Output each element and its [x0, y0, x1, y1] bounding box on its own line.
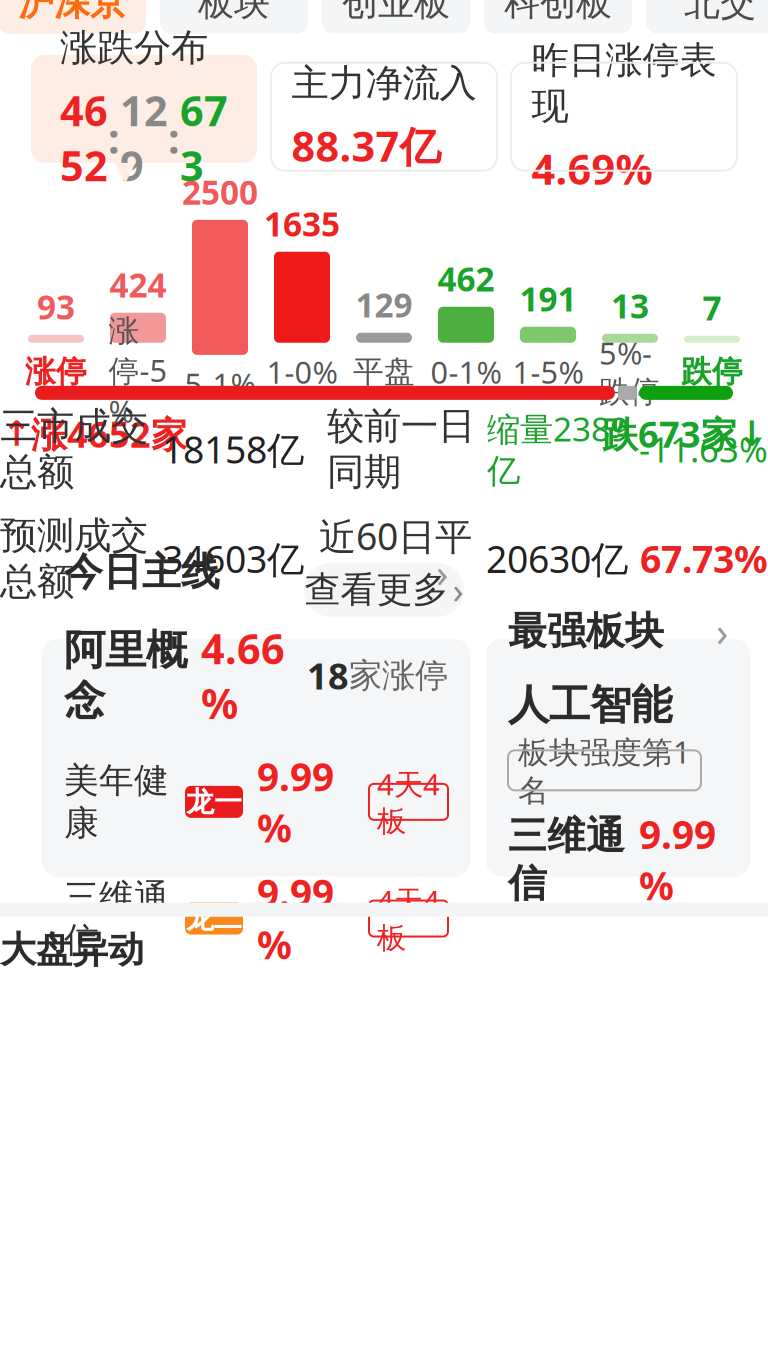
staticText: 9.99% [639, 808, 716, 911]
staticText: 9.99% [257, 750, 334, 853]
staticText: 18 [307, 652, 349, 699]
staticText: 1635 [264, 201, 340, 246]
staticText: 涨4652家 [31, 410, 187, 458]
staticText: 大盘异动 [0, 928, 144, 972]
staticText: 5%-跌停 [599, 333, 661, 411]
staticText: 三维通信 [64, 876, 169, 961]
staticText: 4天4板 [377, 881, 440, 956]
staticText: 主力净流入 [291, 60, 476, 106]
button[interactable]: 沪深京 [0, 0, 146, 34]
staticText: 今日主线 [64, 548, 220, 596]
staticText: 平盘 [353, 353, 415, 391]
staticText: 创业板 [342, 0, 450, 25]
staticText: 88.37亿 [291, 118, 440, 173]
staticText: 67.73% [640, 534, 768, 583]
staticText: ↓ [737, 414, 766, 453]
staticText: › [436, 546, 448, 599]
staticText: 涨停-5% [108, 312, 167, 431]
staticText: 家涨停 [349, 655, 448, 696]
staticText: 129 [355, 282, 412, 327]
staticText: ↑ [2, 414, 31, 453]
staticText: 跌673家 [602, 410, 737, 458]
staticText: 沪深京 [18, 0, 126, 25]
staticText: 北交 [684, 0, 756, 25]
staticText: 查看更多 [304, 568, 448, 612]
staticText: 三维通信 [508, 812, 625, 907]
staticText: 龙一 [186, 785, 242, 819]
staticText: 2500 [182, 170, 258, 214]
staticText: 20630亿 [486, 534, 628, 583]
staticText: 龙二 [186, 901, 242, 936]
button[interactable]: 板块 [160, 0, 308, 34]
button[interactable]: 查看更多 [304, 563, 464, 617]
staticText: 18158亿 [162, 424, 304, 474]
staticText: 0-1% [430, 351, 501, 392]
staticText: 4天4板 [377, 764, 440, 839]
staticText: 跌停 [681, 353, 743, 391]
staticText: 近60日平均 [319, 511, 472, 606]
button[interactable]: 涨跌分布 [31, 55, 257, 179]
staticText: 5-1% [184, 363, 255, 404]
staticText: 人工智能 [508, 680, 672, 730]
staticText: 缩量2389亿 [487, 406, 629, 492]
staticText: 预测成交总额 [0, 513, 148, 604]
staticText: 4652 [60, 83, 108, 193]
staticText: : [108, 110, 120, 165]
staticText: 1-0% [266, 351, 337, 392]
staticText: 462 [437, 256, 494, 301]
button[interactable]: 创业板 [322, 0, 470, 34]
staticText: 最强板块 [508, 607, 664, 655]
staticText: : [168, 110, 180, 165]
staticText: 673 [180, 83, 228, 193]
button[interactable]: 科创板 [484, 0, 632, 34]
button[interactable]: 最强板块 [486, 639, 750, 877]
button[interactable]: 昨日涨停表现 [511, 63, 737, 171]
staticText: ▼ [115, 156, 136, 186]
staticText: -11.63% [639, 426, 768, 472]
staticText: 较前一日同期 [327, 403, 475, 495]
staticText: 阿里概念 [64, 625, 187, 726]
staticText: › [716, 604, 728, 658]
staticText: 424 [109, 262, 166, 307]
staticText: 美年健康 [64, 759, 169, 844]
staticText: 1-5% [512, 351, 583, 392]
button[interactable]: 主力净流入 [271, 63, 497, 171]
staticText: 129 [120, 83, 168, 193]
staticText: 13 [611, 283, 649, 328]
staticText: 9.99% [257, 867, 334, 970]
staticText: 板块 [198, 0, 270, 25]
staticText: 191 [519, 276, 576, 321]
button[interactable]: 北交 [646, 0, 768, 34]
button[interactable]: 今日主线 [42, 639, 470, 877]
staticText: 板块强度第1名 [518, 731, 691, 809]
staticText: › [452, 566, 463, 614]
staticText: 93 [37, 284, 75, 329]
staticText: 涨跌分布 [60, 25, 208, 71]
staticText: 科创板 [504, 0, 612, 25]
staticText: 三市成交总额 [0, 403, 148, 495]
staticText: 4.66% [201, 621, 285, 730]
staticText: 昨日涨停表现 [531, 37, 716, 129]
staticText: 34603亿 [162, 534, 304, 583]
staticText: 7 [702, 285, 721, 330]
staticText: 涨停 [25, 353, 87, 391]
staticText: 4.69% [531, 141, 652, 196]
